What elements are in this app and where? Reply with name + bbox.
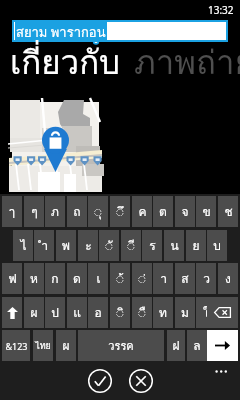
button[interactable]: พ [56, 230, 76, 261]
button[interactable]: ว [196, 263, 216, 294]
staticText: ๆ [31, 202, 38, 221]
button[interactable]: น [164, 230, 184, 261]
staticText: ๅ [9, 202, 15, 221]
staticText: 13:32 [208, 3, 234, 17]
button[interactable]: สยาม พารากอน [12, 20, 228, 42]
button[interactable]: ล [187, 330, 207, 361]
button[interactable]: ด [67, 263, 87, 294]
button[interactable]: ◌่ [132, 263, 152, 294]
button[interactable]: ผ [56, 330, 76, 361]
staticText: บ [213, 236, 221, 255]
button[interactable]: ข [196, 196, 216, 227]
staticText: ม [181, 303, 189, 322]
button[interactable]: Shift [2, 297, 22, 328]
staticText: ย [192, 236, 200, 255]
staticText: ◌ุ [94, 202, 102, 221]
staticText: เกี่ยวกับ [10, 36, 121, 88]
staticText: ข [202, 202, 211, 221]
staticText: ง [225, 269, 231, 288]
staticText: ◌้ [116, 269, 124, 288]
staticText: ป [51, 303, 59, 322]
button[interactable]: ม [175, 297, 195, 328]
button[interactable]: ๅ [2, 196, 22, 227]
staticText: ◌่ [138, 269, 146, 288]
button[interactable]: ไ [13, 230, 33, 261]
staticText: จ [181, 202, 189, 221]
staticText: ไทย [35, 339, 51, 353]
button[interactable]: ◌ี [121, 230, 141, 261]
button[interactable]: ๆ [24, 196, 44, 227]
button[interactable]: ห [24, 263, 44, 294]
button[interactable]: ใ [196, 297, 216, 328]
button[interactable]: ฝ [167, 330, 185, 361]
staticText: ะ [85, 236, 92, 255]
button[interactable]: ต [153, 196, 173, 227]
button[interactable]: า [153, 263, 173, 294]
button[interactable]: เ [88, 263, 108, 294]
staticText: อ [94, 303, 102, 322]
staticText: ด [73, 269, 81, 288]
button[interactable]: ป [45, 297, 65, 328]
button[interactable]: บ [207, 230, 227, 261]
button[interactable]: ะ [78, 230, 98, 261]
staticText: ำ [41, 236, 48, 255]
staticText: พ [62, 236, 70, 255]
staticText: ค [138, 202, 147, 221]
button[interactable]: ำ [34, 230, 54, 261]
button[interactable]: &123 [2, 330, 30, 361]
staticText: ใ [203, 303, 209, 322]
button[interactable]: จ [175, 196, 195, 227]
staticText: &123 [5, 340, 28, 352]
button[interactable]: ย [186, 230, 206, 261]
staticText: ส [181, 269, 189, 288]
button[interactable]: ฟ [2, 263, 22, 294]
staticText: ◌ั [105, 236, 113, 255]
button[interactable]: Cancel [128, 368, 154, 394]
button[interactable]: ◌ั [99, 230, 119, 261]
button[interactable]: วรรค [78, 330, 164, 361]
staticText: ◌ิ [116, 303, 124, 322]
staticText: ก [51, 269, 59, 288]
staticText: แ [73, 303, 81, 322]
staticText: วรรค [108, 337, 134, 354]
button[interactable]: ร [142, 230, 162, 261]
button[interactable]: ◌้ [110, 263, 130, 294]
staticText: ผ [30, 303, 38, 322]
button[interactable]: Enter [207, 330, 238, 361]
button[interactable]: ◌ิ [110, 297, 130, 328]
button[interactable]: ก [45, 263, 65, 294]
button[interactable]: ถ [67, 196, 87, 227]
button[interactable]: ผ [24, 297, 44, 328]
button[interactable]: ไทย [33, 330, 53, 361]
staticText: ภ [51, 202, 59, 221]
staticText: ไ [20, 236, 27, 255]
staticText: ว [203, 269, 210, 288]
staticText: ฝ [172, 336, 180, 355]
button[interactable]: ◌ุ [88, 196, 108, 227]
staticText: ภาพถ่าย [134, 36, 240, 88]
button[interactable]: ภ [45, 196, 65, 227]
button[interactable]: อ [88, 297, 108, 328]
staticText: ล [193, 336, 201, 355]
button[interactable]: ◌ึ [110, 196, 130, 227]
staticText: น [170, 236, 179, 255]
staticText: ◌ี [127, 236, 135, 255]
staticText: ◌ึ [116, 202, 124, 221]
staticText: ถ [73, 202, 81, 221]
staticText: เ [96, 269, 101, 288]
staticText: า [160, 269, 167, 288]
staticText: สยาม พารากอน [16, 22, 106, 40]
staticText: ต [159, 202, 167, 221]
button[interactable]: ◌ื [132, 297, 152, 328]
button[interactable]: Accept [87, 368, 113, 394]
button[interactable]: ช [218, 196, 238, 227]
button[interactable]: ง [218, 263, 238, 294]
button[interactable]: ค [132, 196, 152, 227]
button[interactable]: แ [67, 297, 87, 328]
button[interactable]: More options [208, 363, 234, 381]
staticText: ร [149, 236, 156, 255]
staticText: ช [224, 202, 233, 221]
button[interactable]: ท [153, 297, 173, 328]
button[interactable]: ส [175, 263, 195, 294]
button[interactable]: Backspace [207, 297, 238, 328]
